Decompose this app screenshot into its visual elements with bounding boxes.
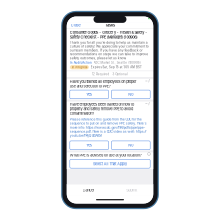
staticText: Expires Sat, Sep 15 at 1:05 AM BST	[91, 65, 142, 69]
button[interactable]: Yes	[70, 141, 108, 150]
button[interactable]: Close	[70, 22, 82, 28]
staticText: Submit	[126, 188, 137, 192]
staticText: /1	[148, 102, 150, 105]
staticText: ABC Market St., Seattle (100906)	[94, 61, 141, 64]
button[interactable]: No	[111, 141, 150, 150]
staticText: 3 Optional	[112, 72, 128, 76]
staticText: 12 Required	[92, 72, 109, 76]
staticText: /1	[148, 79, 150, 83]
staticText: Have you trained all employees on proper…	[70, 79, 136, 88]
staticText: Tasks	[105, 23, 115, 27]
staticText: Close	[71, 23, 81, 27]
staticText: No	[128, 92, 133, 97]
staticText: Thank you for all you're doing to help u…	[70, 41, 149, 60]
staticText: No	[128, 143, 133, 147]
button[interactable]: No	[111, 90, 150, 99]
staticText: Consumer Goods - Grocery - Health & Safe…	[70, 30, 147, 35]
staticText: Yes	[86, 143, 92, 147]
button[interactable]: Submit	[110, 184, 153, 196]
button[interactable]: Select All That Apply	[70, 159, 150, 168]
staticText: Have employees been trained on how to pr…	[70, 102, 134, 116]
staticText: Select All That Apply	[93, 161, 127, 166]
button[interactable]: Yes	[70, 90, 108, 99]
staticText: In Audit/Action	[70, 61, 92, 64]
staticText: Safety Checklist - PPE (Manager) (100906…	[70, 35, 137, 39]
staticText: Yes	[86, 92, 92, 97]
staticText: Please reference this guide from the CDC…	[70, 117, 147, 137]
staticText: What PPE is advised for use at your loca…	[70, 153, 142, 157]
staticText: In Progress	[72, 66, 87, 69]
staticText: Cancel	[82, 188, 94, 192]
button[interactable]: Cancel	[67, 184, 110, 196]
